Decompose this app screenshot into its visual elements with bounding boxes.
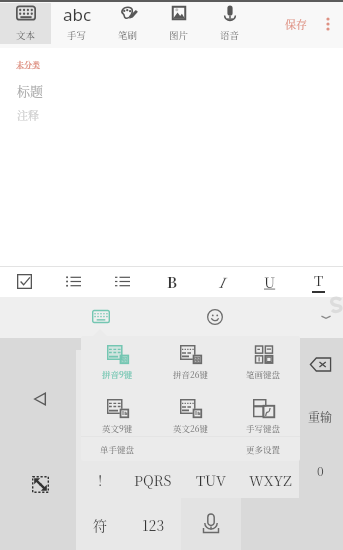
button[interactable]: WXYZ bbox=[241, 461, 299, 498]
button[interactable] bbox=[181, 424, 241, 461]
button[interactable]: 分词 bbox=[76, 424, 124, 461]
button[interactable]: DEF bbox=[181, 350, 241, 387]
staticText: 保存 bbox=[285, 16, 307, 32]
button[interactable]: B bbox=[147, 266, 196, 297]
staticText: 英文9键 bbox=[102, 422, 133, 434]
button[interactable]: 笔刷 bbox=[102, 3, 153, 44]
button[interactable]: Checklist bbox=[0, 266, 49, 297]
staticText: ! bbox=[98, 470, 103, 490]
staticText: 笔刷 bbox=[118, 28, 138, 42]
button[interactable]: 拼音9键 bbox=[81, 336, 154, 390]
button[interactable]: 图片 bbox=[153, 3, 204, 44]
staticText: T bbox=[314, 270, 324, 290]
staticText: 重输 bbox=[308, 408, 333, 425]
button[interactable]: abc bbox=[51, 3, 102, 44]
button[interactable]: T bbox=[294, 266, 343, 297]
staticText: 符 bbox=[93, 515, 107, 535]
staticText: DEF bbox=[197, 359, 226, 379]
button[interactable]: 文本 bbox=[0, 3, 51, 44]
button[interactable]: Bulleted list bbox=[49, 266, 98, 297]
button[interactable]: Emoji bbox=[197, 299, 232, 334]
button[interactable]: Hide keyboard bbox=[308, 299, 343, 334]
button[interactable]: @/. bbox=[76, 350, 124, 387]
button[interactable]: 保存 bbox=[279, 0, 313, 48]
staticText: @/. bbox=[90, 359, 111, 379]
button[interactable] bbox=[241, 350, 299, 387]
button[interactable]: Backspace bbox=[298, 346, 343, 382]
staticText: 未分类 bbox=[16, 59, 40, 70]
staticText: 单手键盘 bbox=[100, 443, 135, 455]
staticText: 拼音26键 bbox=[173, 368, 208, 380]
button[interactable] bbox=[241, 424, 299, 461]
button[interactable]: 重输 bbox=[298, 398, 343, 434]
button[interactable]: 笔画键盘 bbox=[227, 336, 300, 390]
button[interactable]: 单手键盘 bbox=[81, 437, 154, 461]
button[interactable]: Keyboard layout bbox=[83, 299, 118, 334]
button[interactable]: GHI bbox=[76, 387, 124, 424]
button[interactable] bbox=[181, 498, 241, 550]
button[interactable]: U bbox=[245, 266, 294, 297]
button[interactable]: Previous page bbox=[29, 388, 51, 410]
staticText: 语音 bbox=[220, 28, 240, 42]
button[interactable]: JKL bbox=[124, 387, 182, 424]
staticText: abc bbox=[63, 3, 92, 23]
staticText: 分词 bbox=[86, 433, 114, 453]
staticText: GHI bbox=[86, 396, 114, 416]
button[interactable]: I bbox=[196, 266, 245, 297]
staticText: 注释 bbox=[17, 107, 39, 123]
staticText: 笔画键盘 bbox=[246, 368, 281, 380]
staticText: 文本 bbox=[16, 28, 36, 42]
staticText: PQRS bbox=[134, 470, 172, 490]
staticText: I bbox=[218, 272, 224, 292]
button[interactable]: ABC bbox=[124, 350, 182, 387]
staticText: 更多设置 bbox=[246, 443, 281, 455]
staticText: TUV bbox=[196, 470, 226, 490]
staticText: 手写 bbox=[67, 28, 87, 42]
button[interactable]: 英文26键 bbox=[154, 390, 227, 436]
button[interactable]: 0 bbox=[298, 452, 343, 488]
staticText: 手写键盘 bbox=[246, 422, 281, 434]
button[interactable]: Resize keyboard bbox=[29, 473, 51, 495]
button[interactable]: 语音 bbox=[204, 3, 255, 44]
button[interactable]: 手写键盘 bbox=[227, 390, 300, 436]
button[interactable]: More options bbox=[313, 0, 343, 48]
staticText: B bbox=[167, 272, 177, 292]
staticText: WXYZ bbox=[249, 470, 292, 490]
button[interactable]: Numbered list bbox=[98, 266, 147, 297]
button[interactable] bbox=[241, 387, 299, 424]
staticText: 图片 bbox=[169, 28, 189, 42]
staticText: MNO bbox=[193, 396, 229, 416]
staticText: 0 bbox=[317, 462, 324, 479]
button[interactable]: ! bbox=[76, 461, 124, 498]
button[interactable]: 符 bbox=[76, 498, 124, 550]
button[interactable]: 123 bbox=[124, 498, 182, 550]
staticText: 123 bbox=[142, 515, 165, 535]
button[interactable]: 拼音26键 bbox=[154, 336, 227, 390]
button[interactable]: PQRS bbox=[124, 461, 182, 498]
staticText: U bbox=[264, 272, 276, 292]
button[interactable]: 更多设置 bbox=[227, 437, 300, 461]
button[interactable]: MNO bbox=[181, 387, 241, 424]
staticText: 标题 bbox=[17, 81, 44, 100]
button[interactable]: 英文9键 bbox=[81, 390, 154, 436]
staticText: 英文26键 bbox=[173, 422, 208, 434]
button[interactable]: TUV bbox=[181, 461, 241, 498]
staticText: 拼音9键 bbox=[102, 368, 133, 380]
button[interactable]: 未分类 bbox=[16, 59, 40, 70]
button[interactable]: 空格 bbox=[124, 424, 182, 461]
